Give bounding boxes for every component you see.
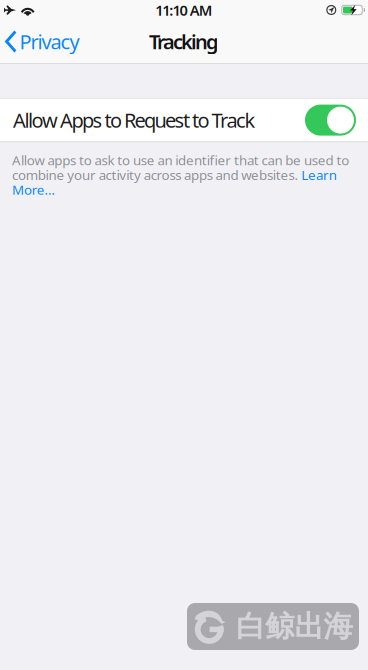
staticText: Privacy bbox=[19, 28, 79, 55]
button[interactable]: Privacy bbox=[0, 20, 87, 62]
button[interactable]: Allow Apps to Request to Track bbox=[0, 99, 368, 142]
staticText: 白鲸出海 bbox=[236, 608, 353, 644]
staticText: Allow apps to ask to use an identifier t… bbox=[12, 151, 349, 198]
staticText: 11:10 AM bbox=[155, 0, 213, 20]
staticText: Tracking bbox=[149, 28, 219, 55]
staticText: Allow Apps to Request to Track bbox=[13, 107, 255, 133]
